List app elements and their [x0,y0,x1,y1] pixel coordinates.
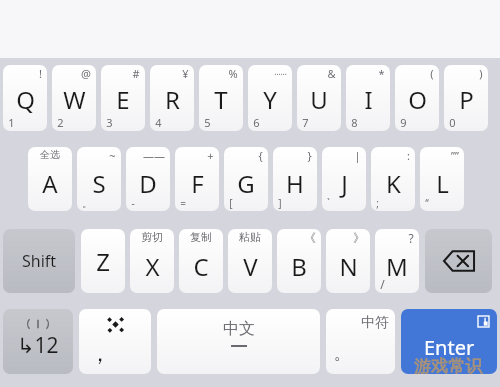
staticText: B [291,250,307,283]
staticText: A [42,167,58,200]
staticText: 全选 [40,148,60,161]
button[interactable]: Q [3,65,47,131]
staticText: ! [39,66,42,81]
staticText: 剪切 [141,230,163,244]
button[interactable]: B [277,229,321,293]
button[interactable]: U [297,65,341,131]
staticText: / [380,276,385,292]
button[interactable]: W [52,65,96,131]
staticText: 《 [304,230,316,245]
button[interactable]: N [326,229,370,293]
button[interactable]: Chinese punctuation [326,309,395,374]
staticText: ` [327,196,330,210]
button[interactable]: Space [157,309,320,374]
button[interactable]: L [420,147,464,211]
staticText: I [364,83,373,116]
staticText: T [214,83,228,116]
staticText: Shift [22,250,57,272]
staticText: 6 [253,115,260,130]
staticText: V [243,250,258,283]
staticText: 7 [302,115,309,130]
staticText: ¥ [182,66,189,81]
staticText: 复制 [190,230,212,244]
staticText: } [307,148,312,163]
button[interactable]: R [150,65,194,131]
button[interactable]: Backspace [425,229,492,293]
button[interactable]: Enter [401,309,497,374]
button[interactable]: P [444,65,488,131]
staticText: L [436,167,449,200]
button[interactable]: F [175,147,219,211]
staticText: 8 [351,115,358,130]
button[interactable]: I [346,65,390,131]
button[interactable]: A [28,147,72,211]
staticText: Z [96,245,110,278]
staticText: H [286,167,304,200]
staticText: 3 [106,115,113,130]
button[interactable]: K [371,147,415,211]
staticText: 中符 [361,314,389,332]
staticText: Enter [424,334,475,361]
button[interactable]: Z [81,229,125,293]
button[interactable]: J [322,147,366,211]
button[interactable]: C [179,229,223,293]
staticText: 。 [82,197,92,210]
button[interactable]: O [395,65,439,131]
staticText: ↳12 [17,331,59,360]
staticText: : [407,148,410,163]
staticText: 0 [449,115,456,130]
button[interactable]: D [126,147,170,211]
button[interactable]: G [224,147,268,211]
staticText: | [354,148,361,163]
button[interactable]: Switch to numbers and symbols [3,309,73,374]
staticText: @ [81,66,91,81]
staticText: ~ [109,148,116,163]
staticText: 2 [57,115,64,130]
staticText: ‘‘ [425,196,429,210]
staticText: 》 [353,230,365,245]
staticText: + [207,148,214,163]
staticText: - [131,196,135,210]
button[interactable]: Y [248,65,292,131]
button[interactable]: V [228,229,272,293]
staticText: { [258,148,263,163]
staticText: Q [16,83,35,116]
staticText: U [310,83,328,116]
staticText: ; [376,196,379,210]
staticText: ， [89,340,111,368]
staticText: —— [143,148,165,163]
staticText: D [139,167,157,200]
staticText: R [165,83,180,116]
staticText: G [237,167,255,200]
staticText: N [339,250,358,283]
staticText: S [92,167,106,200]
button[interactable]: T [199,65,243,131]
staticText: 游戏常识 [414,356,482,377]
button[interactable]: S [77,147,121,211]
staticText: 4 [155,115,162,130]
button[interactable]: Comma [79,309,151,374]
staticText: 5 [204,115,211,130]
staticText: # [132,66,140,81]
staticText: 9 [400,115,407,130]
staticText: % [228,66,238,81]
staticText: & [327,66,336,81]
staticText: [ [229,196,233,210]
staticText: K [386,167,401,200]
staticText: X [145,250,160,283]
staticText: O [408,83,427,116]
staticText: C [193,250,209,283]
button[interactable]: X [130,229,174,293]
button[interactable]: E [101,65,145,131]
staticText: ? [408,230,414,246]
staticText: * [378,66,385,81]
staticText: ”” [451,148,459,163]
staticText: ) [479,66,483,81]
staticText: M [386,250,408,283]
button[interactable]: M [375,229,419,293]
button[interactable]: H [273,147,317,211]
staticText: = [180,196,186,210]
button[interactable]: Shift [3,229,75,293]
staticText: 粘贴 [239,230,261,244]
staticText: F [191,167,204,200]
